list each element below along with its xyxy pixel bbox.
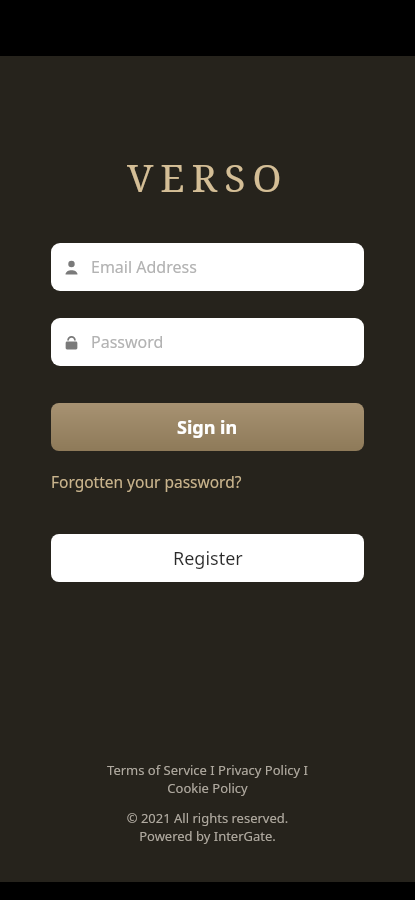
button[interactable]: Sign in (51, 403, 364, 451)
staticText: © 2021 All rights reserved. Powered by I… (0, 809, 415, 845)
staticText: Register (173, 546, 243, 571)
staticText: Password (91, 331, 164, 353)
button[interactable]: Terms of Service I Privacy Policy I Cook… (0, 761, 415, 797)
staticText: Email Address (91, 256, 197, 278)
staticText: Forgotten your password? (51, 471, 242, 492)
button[interactable]: Password (51, 318, 364, 366)
button[interactable]: Forgotten your password? (51, 471, 242, 492)
staticText: Terms of Service I Privacy Policy I Cook… (0, 761, 415, 797)
staticText: VERSO (127, 150, 289, 203)
staticText: Sign in (177, 415, 238, 440)
button[interactable]: Register (51, 534, 364, 582)
button[interactable]: Email Address (51, 243, 364, 291)
